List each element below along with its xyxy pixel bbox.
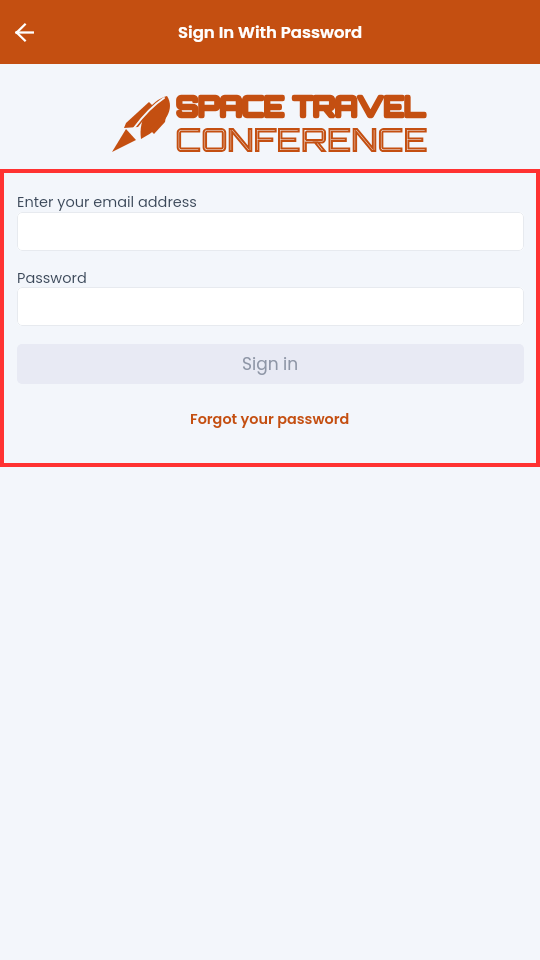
staticText: Sign in (242, 352, 299, 376)
button[interactable]: Forgot your password (190, 409, 350, 429)
button[interactable]: Sign in (17, 344, 524, 384)
staticText: Sign In With Password (178, 21, 363, 44)
button[interactable]: Back (0, 8, 48, 56)
staticText: Password (17, 268, 87, 288)
staticText: SPACE TRAVEL (177, 91, 426, 122)
staticText: CONFERENCE (176, 121, 429, 159)
staticText: SPACE TRAVEL (177, 91, 426, 122)
staticText: Enter your email address (17, 192, 197, 212)
